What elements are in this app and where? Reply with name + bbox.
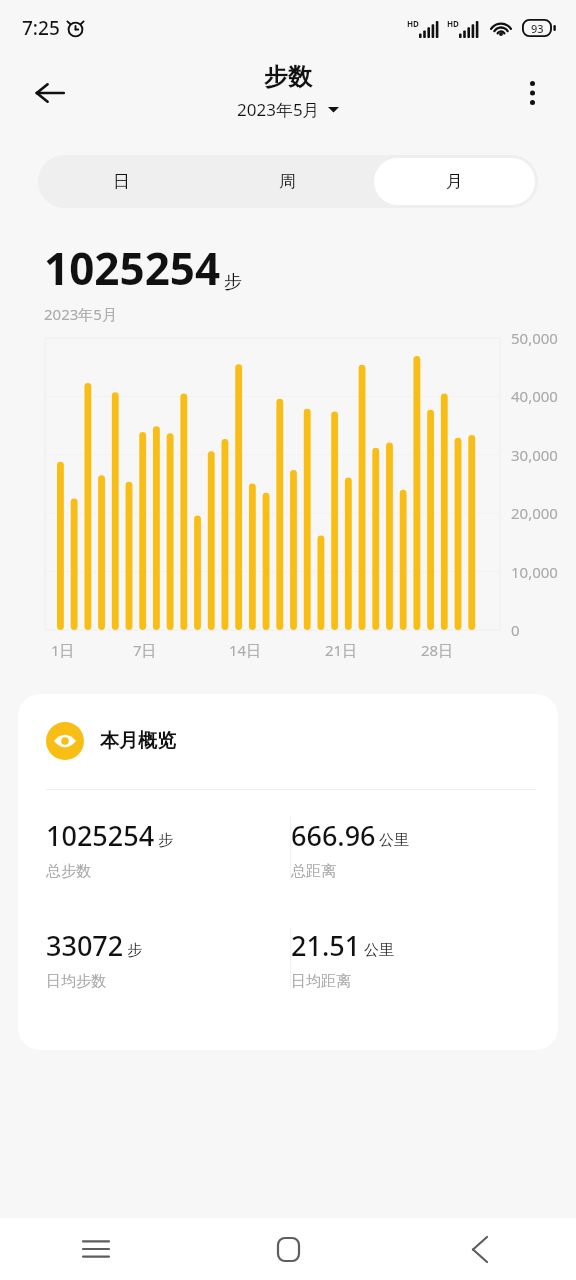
- staticText: 步: [224, 271, 242, 294]
- button[interactable]: 周: [207, 158, 368, 205]
- button[interactable]: Home: [192, 1218, 384, 1280]
- staticText: 14日: [229, 640, 262, 660]
- staticText: 0: [511, 620, 520, 640]
- staticText: 28日: [421, 640, 454, 660]
- staticText: 33072: [46, 927, 124, 964]
- staticText: 10,000: [511, 562, 558, 582]
- staticText: 7日: [133, 640, 157, 660]
- staticText: 1025254: [44, 238, 221, 298]
- staticText: 2023年5月: [44, 304, 117, 324]
- button[interactable]: 本月概览: [18, 694, 558, 1050]
- staticText: 1日: [51, 640, 75, 660]
- staticText: 月: [446, 171, 463, 192]
- staticText: 日均距离: [291, 972, 351, 991]
- staticText: 公里: [379, 831, 409, 850]
- staticText: 1025254: [46, 817, 155, 854]
- staticText: 步数: [264, 62, 312, 92]
- staticText: 50,000: [511, 328, 558, 348]
- staticText: 本月概览: [100, 729, 176, 753]
- staticText: 总步数: [46, 862, 91, 881]
- button[interactable]: More options: [506, 67, 558, 119]
- button[interactable]: 2023年5月: [232, 96, 344, 123]
- staticText: 666.96: [291, 817, 376, 854]
- staticText: 步: [158, 831, 173, 850]
- button[interactable]: Back: [22, 65, 78, 121]
- staticText: 步: [127, 941, 142, 960]
- staticText: 7:25: [22, 15, 60, 41]
- button[interactable]: Back: [384, 1218, 576, 1280]
- staticText: 20,000: [511, 503, 558, 523]
- staticText: 21日: [325, 640, 358, 660]
- staticText: 公里: [364, 941, 394, 960]
- staticText: HD: [407, 18, 419, 29]
- staticText: 30,000: [511, 445, 558, 465]
- button[interactable]: Recent apps: [0, 1218, 192, 1280]
- staticText: 40,000: [511, 386, 558, 406]
- button[interactable]: 月: [374, 158, 535, 205]
- button[interactable]: 日: [41, 158, 201, 205]
- staticText: 日: [113, 171, 130, 192]
- staticText: 93: [531, 21, 544, 36]
- staticText: 总距离: [291, 862, 336, 881]
- staticText: 日均步数: [46, 972, 106, 991]
- staticText: HD: [447, 18, 459, 29]
- staticText: 周: [279, 171, 296, 192]
- staticText: 21.51: [291, 927, 361, 964]
- staticText: 2023年5月: [237, 98, 320, 121]
